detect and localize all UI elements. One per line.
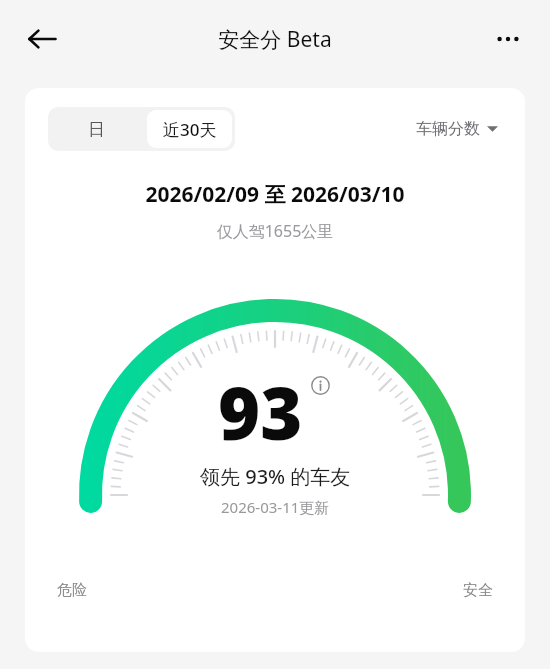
staticText: 安全分 Beta	[218, 25, 332, 54]
staticText: 2026-03-11更新	[221, 497, 330, 517]
staticText: 安全	[463, 581, 493, 600]
button[interactable]: Score info	[308, 373, 332, 397]
staticText: 2026/02/09 至 2026/03/10	[25, 180, 525, 209]
button[interactable]: More options	[484, 15, 532, 63]
staticText: 仅人驾1655公里	[25, 220, 525, 242]
staticText: 日	[88, 119, 105, 140]
button[interactable]: 日	[48, 107, 144, 151]
button[interactable]: 车辆分数	[412, 115, 502, 143]
staticText: 领先 93% 的车友	[200, 463, 351, 490]
button[interactable]: Back	[18, 15, 66, 63]
button[interactable]: 近30天	[147, 110, 232, 148]
staticText: 93	[218, 363, 303, 461]
staticText: 车辆分数	[416, 119, 480, 139]
staticText: 近30天	[163, 118, 217, 141]
staticText: 危险	[57, 581, 87, 600]
